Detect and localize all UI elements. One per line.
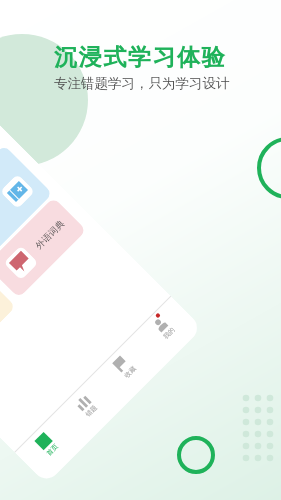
staticText: 沉浸式学习体验 bbox=[54, 43, 227, 72]
button[interactable] bbox=[0, 273, 16, 372]
staticText: 收藏 bbox=[123, 365, 138, 379]
staticText: 外语词典 bbox=[33, 218, 66, 251]
button[interactable]: 收藏 bbox=[97, 339, 164, 406]
staticText: 我的 bbox=[162, 326, 176, 341]
staticText: 专注错题学习，只为学习设计 bbox=[54, 75, 230, 92]
button[interactable]: 我的 bbox=[136, 300, 203, 367]
staticText: 首页 bbox=[45, 442, 60, 457]
button[interactable] bbox=[0, 145, 53, 263]
button[interactable]: 外语词典 bbox=[0, 197, 87, 298]
button[interactable]: 错题 bbox=[58, 378, 125, 445]
button[interactable]: 首页 bbox=[19, 417, 86, 484]
staticText: 错题 bbox=[84, 404, 99, 418]
